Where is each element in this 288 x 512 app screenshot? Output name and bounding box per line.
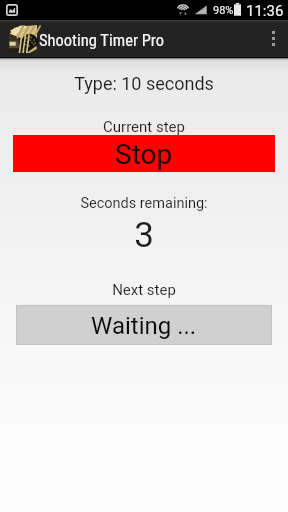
staticText: 3 (0, 215, 288, 256)
button[interactable]: More options (258, 20, 288, 57)
staticText: Type: 10 seconds (0, 73, 288, 94)
staticText: 11:36 (246, 2, 284, 20)
staticText: Stop (115, 138, 173, 171)
staticText: Next step (0, 281, 288, 299)
staticText: Waiting ... (91, 312, 197, 340)
button[interactable]: Stop (13, 135, 275, 172)
staticText: Seconds remaining: (0, 195, 288, 212)
button[interactable]: Waiting ... (16, 305, 272, 345)
staticText: Current step (0, 118, 288, 136)
staticText: 98% (213, 4, 234, 17)
staticText: Shooting Timer Pro (39, 31, 164, 50)
